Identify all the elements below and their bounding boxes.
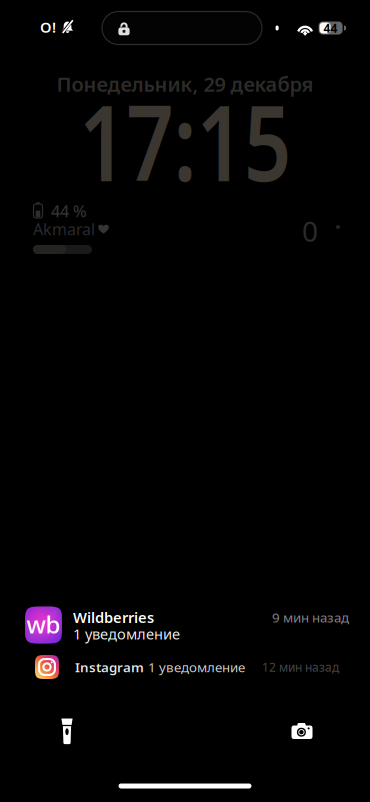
staticText: 17:15 <box>52 72 317 210</box>
staticText: 12 мин назад <box>262 659 339 675</box>
staticText: 44 % <box>51 200 87 222</box>
staticText: O! <box>40 17 56 37</box>
button[interactable]: Camera <box>278 707 326 755</box>
staticText: Akmaral <box>33 218 95 240</box>
staticText: Instagram <box>75 658 144 676</box>
staticText: 1 уведомление <box>73 624 180 643</box>
button[interactable]: wb <box>25 602 349 648</box>
staticText: wb <box>26 608 60 640</box>
staticText: 0 <box>302 212 318 250</box>
staticText: Понедельник, 29 декабря <box>56 71 313 97</box>
button[interactable]: Flashlight <box>43 707 91 755</box>
staticText: Wildberries <box>73 607 154 627</box>
staticText: 44 <box>324 20 338 36</box>
button[interactable]: Instagram <box>35 654 351 680</box>
staticText: 9 мин назад <box>272 608 349 626</box>
staticText: 1 уведомление <box>148 658 245 676</box>
